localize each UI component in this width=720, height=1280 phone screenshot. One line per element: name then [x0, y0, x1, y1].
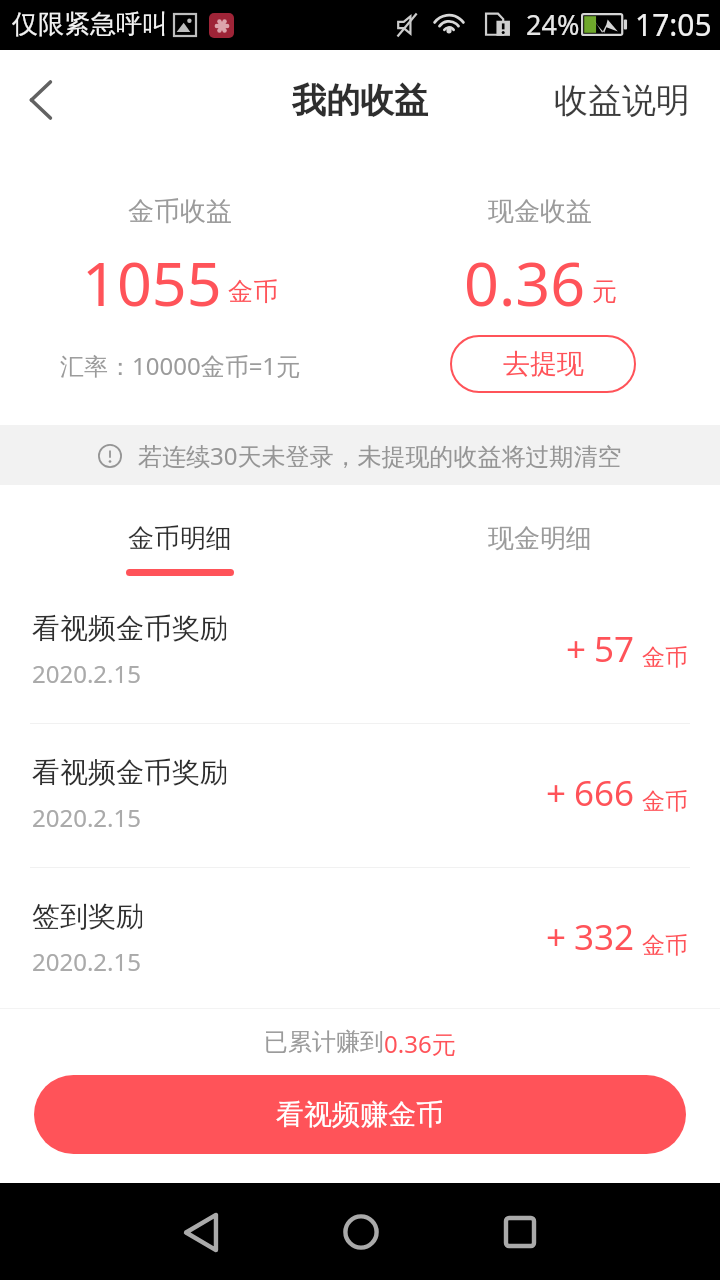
button[interactable]: 看视频赚金币 — [34, 1075, 686, 1154]
staticText: 57 — [594, 625, 635, 673]
staticText: 我的收益 — [292, 79, 428, 122]
staticText: 2020.2.15 — [32, 945, 141, 978]
staticText: + — [546, 913, 567, 961]
staticText: 现金明细 — [488, 522, 592, 555]
staticText: 金币收益 — [128, 195, 232, 228]
staticText: 0.36元 — [384, 1027, 456, 1060]
staticText: 看视频金币奖励 — [32, 755, 228, 790]
staticText: 金币明细 — [128, 522, 232, 555]
button[interactable]: Home — [321, 1192, 401, 1272]
staticText: 签到奖励 — [32, 899, 144, 934]
button[interactable]: 现金明细 — [360, 485, 720, 579]
button[interactable]: 收益说明 — [532, 61, 720, 140]
button[interactable]: 看视频金币奖励 — [0, 723, 720, 867]
staticText: 仅限紧急呼叫 — [12, 8, 168, 41]
staticText: 0.36 — [464, 241, 586, 324]
staticText: 看视频金币奖励 — [32, 611, 228, 646]
staticText: 去提现 — [503, 347, 584, 381]
button[interactable]: Back — [161, 1192, 241, 1272]
staticText: 若连续30天未登录，未提现的收益将过期清空 — [138, 439, 622, 472]
button[interactable]: 看视频金币奖励 — [0, 579, 720, 723]
staticText: 已累计赚到 — [264, 1027, 384, 1057]
staticText: 2020.2.15 — [32, 801, 141, 834]
staticText: 332 — [574, 913, 635, 961]
staticText: + — [546, 769, 567, 817]
button[interactable]: 签到奖励 — [0, 867, 720, 1011]
button[interactable]: 金币明细 — [0, 485, 360, 579]
staticText: 金币 — [228, 276, 278, 307]
staticText: 17:05 — [635, 4, 712, 45]
staticText: 现金收益 — [488, 195, 592, 228]
staticText: 金币 — [642, 643, 688, 672]
staticText: 看视频赚金币 — [276, 1097, 444, 1132]
button[interactable]: Recent apps — [480, 1192, 560, 1272]
staticText: 24% — [526, 6, 580, 43]
button[interactable]: Back — [7, 65, 77, 135]
staticText: 汇率：10000金币=1元 — [60, 349, 301, 382]
staticText: 1055 — [82, 241, 222, 324]
staticText: 金币 — [642, 787, 688, 816]
staticText: 666 — [574, 769, 635, 817]
staticText: 金币 — [642, 931, 688, 960]
staticText: + — [566, 625, 587, 673]
staticText: 元 — [592, 276, 617, 307]
staticText: 2020.2.15 — [32, 657, 141, 690]
button[interactable]: 去提现 — [450, 335, 636, 393]
